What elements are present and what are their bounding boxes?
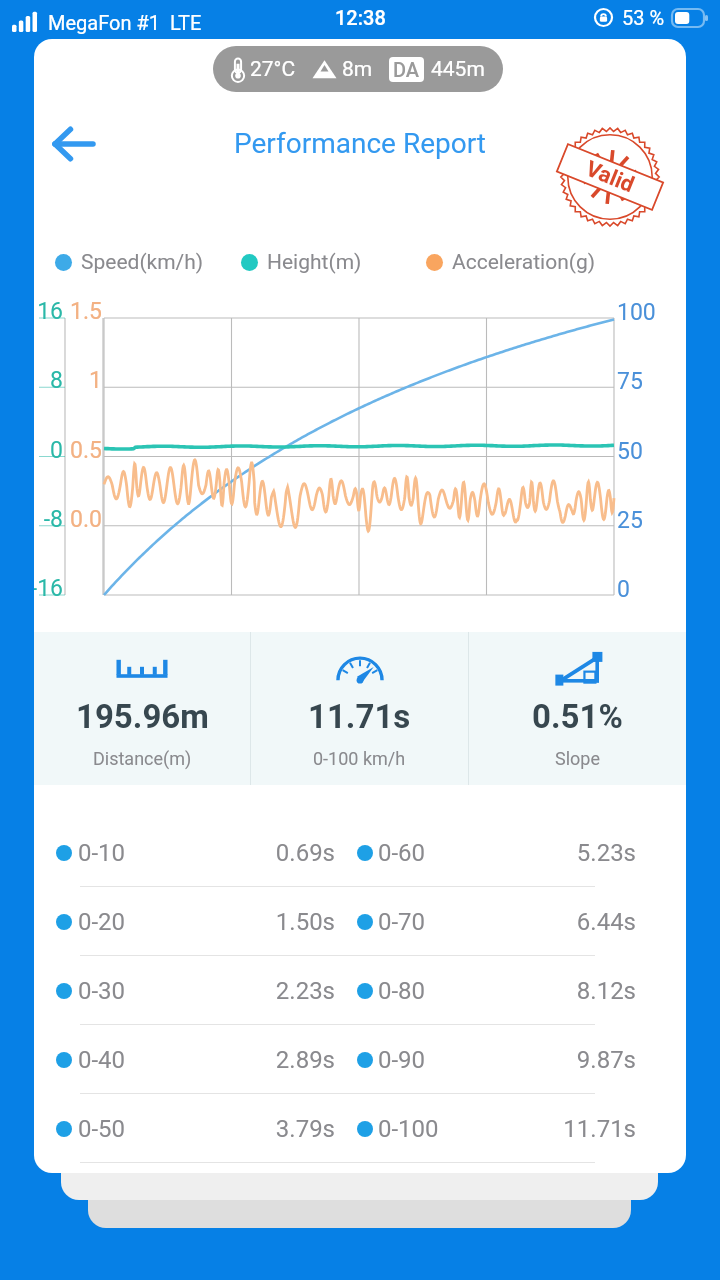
- staticText: Acceleration(g): [452, 250, 596, 275]
- staticText: 8: [34, 367, 63, 394]
- button[interactable]: 0-40: [34, 1025, 686, 1094]
- staticText: 0-30: [78, 977, 126, 1005]
- staticText: 3.79s: [255, 1115, 335, 1143]
- staticText: Speed(km/h): [81, 250, 204, 275]
- staticText: MegaFon #1 LTE: [48, 11, 202, 34]
- staticText: -8: [34, 506, 63, 533]
- staticText: Slope: [555, 748, 600, 769]
- staticText: 6.44s: [556, 908, 636, 936]
- button[interactable]: 195.96m: [34, 632, 250, 785]
- staticText: 0: [34, 437, 63, 464]
- staticText: 0-80: [378, 977, 426, 1005]
- staticText: 5.23s: [556, 839, 636, 867]
- button[interactable]: 0-10: [34, 818, 686, 887]
- staticText: 0-70: [378, 908, 426, 936]
- staticText: 11.71s: [308, 697, 411, 736]
- staticText: 2.23s: [255, 977, 335, 1005]
- staticText: Distance(m): [93, 748, 192, 769]
- staticText: 0-60: [378, 839, 426, 867]
- staticText: 9.87s: [556, 1046, 636, 1074]
- staticText: 0-50: [78, 1115, 126, 1143]
- staticText: 50: [617, 438, 667, 465]
- staticText: 0.0: [67, 506, 102, 533]
- staticText: 2.89s: [255, 1046, 335, 1074]
- staticText: 8m: [342, 57, 373, 82]
- staticText: 0-40: [78, 1046, 126, 1074]
- staticText: 12:38: [335, 6, 386, 29]
- button[interactable]: 0-30: [34, 956, 686, 1025]
- staticText: 11.71s: [556, 1115, 636, 1143]
- button[interactable]: 0-50: [34, 1094, 686, 1163]
- staticText: 0-90: [378, 1046, 426, 1074]
- staticText: 1.50s: [255, 908, 335, 936]
- staticText: 25: [617, 507, 667, 534]
- staticText: 27°C: [250, 57, 296, 82]
- staticText: 0-100: [378, 1115, 439, 1143]
- staticText: 0.51%: [532, 697, 623, 736]
- staticText: 195.96m: [76, 697, 209, 736]
- staticText: 53 %: [622, 6, 665, 29]
- staticText: -16: [34, 575, 63, 602]
- button[interactable]: Back: [44, 114, 104, 174]
- staticText: 16: [34, 298, 63, 325]
- button[interactable]: 0.51%: [469, 632, 686, 785]
- staticText: Performance Report: [34, 127, 686, 160]
- staticText: 100: [617, 299, 667, 326]
- staticText: 0-10: [78, 839, 126, 867]
- staticText: 8.12s: [556, 977, 636, 1005]
- button[interactable]: 11.71s: [251, 632, 468, 785]
- staticText: 1.5: [67, 298, 102, 325]
- staticText: 1: [67, 367, 102, 394]
- staticText: Height(m): [267, 250, 362, 275]
- staticText: 445m: [431, 57, 485, 82]
- staticText: 0-20: [78, 908, 126, 936]
- staticText: 0: [617, 576, 667, 603]
- staticText: 0.5: [67, 437, 102, 464]
- staticText: 75: [617, 368, 667, 395]
- staticText: 0.69s: [255, 839, 335, 867]
- button[interactable]: 27°C: [213, 46, 503, 92]
- staticText: Valid: [582, 156, 638, 198]
- staticText: 0-100 km/h: [313, 748, 406, 769]
- button[interactable]: 0-20: [34, 887, 686, 956]
- staticText: DA: [393, 58, 420, 81]
